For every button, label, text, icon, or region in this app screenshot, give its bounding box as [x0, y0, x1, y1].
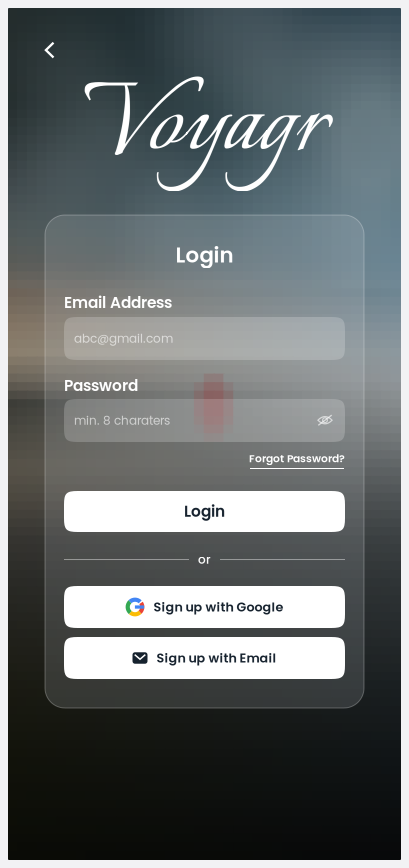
- staticText: Password: [64, 375, 138, 396]
- staticText: Login: [184, 501, 225, 522]
- staticText: Sign up with Email: [156, 649, 276, 667]
- button[interactable]: Sign up with Email: [64, 637, 345, 679]
- staticText: abc@gmail.com: [74, 330, 173, 347]
- staticText: Voyagr: [83, 50, 326, 204]
- button[interactable]: Sign up with Google: [64, 586, 345, 628]
- staticText: Login: [175, 240, 233, 270]
- button[interactable]: Show password: [317, 414, 333, 427]
- staticText: Sign up with Google: [153, 598, 283, 616]
- button[interactable]: Login: [64, 491, 345, 532]
- button[interactable]: Forgot Password?: [249, 452, 345, 468]
- button[interactable]: Back: [28, 28, 72, 72]
- staticText: or: [198, 551, 211, 568]
- staticText: min. 8 charaters: [74, 412, 170, 429]
- staticText: Forgot Password?: [249, 451, 345, 466]
- staticText: Email Address: [64, 292, 172, 313]
